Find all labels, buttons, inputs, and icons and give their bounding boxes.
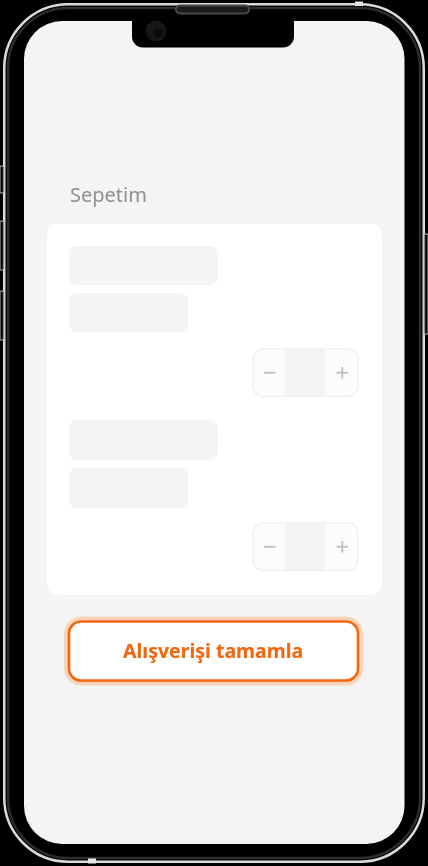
staticText: Alışverişi tamamla xyxy=(123,637,304,664)
button[interactable] xyxy=(325,523,358,571)
button[interactable] xyxy=(253,523,285,571)
button[interactable] xyxy=(325,349,358,397)
button[interactable]: Alışverişi tamamla xyxy=(69,621,358,681)
staticText: Sepetim xyxy=(70,181,147,208)
button[interactable] xyxy=(253,349,285,397)
